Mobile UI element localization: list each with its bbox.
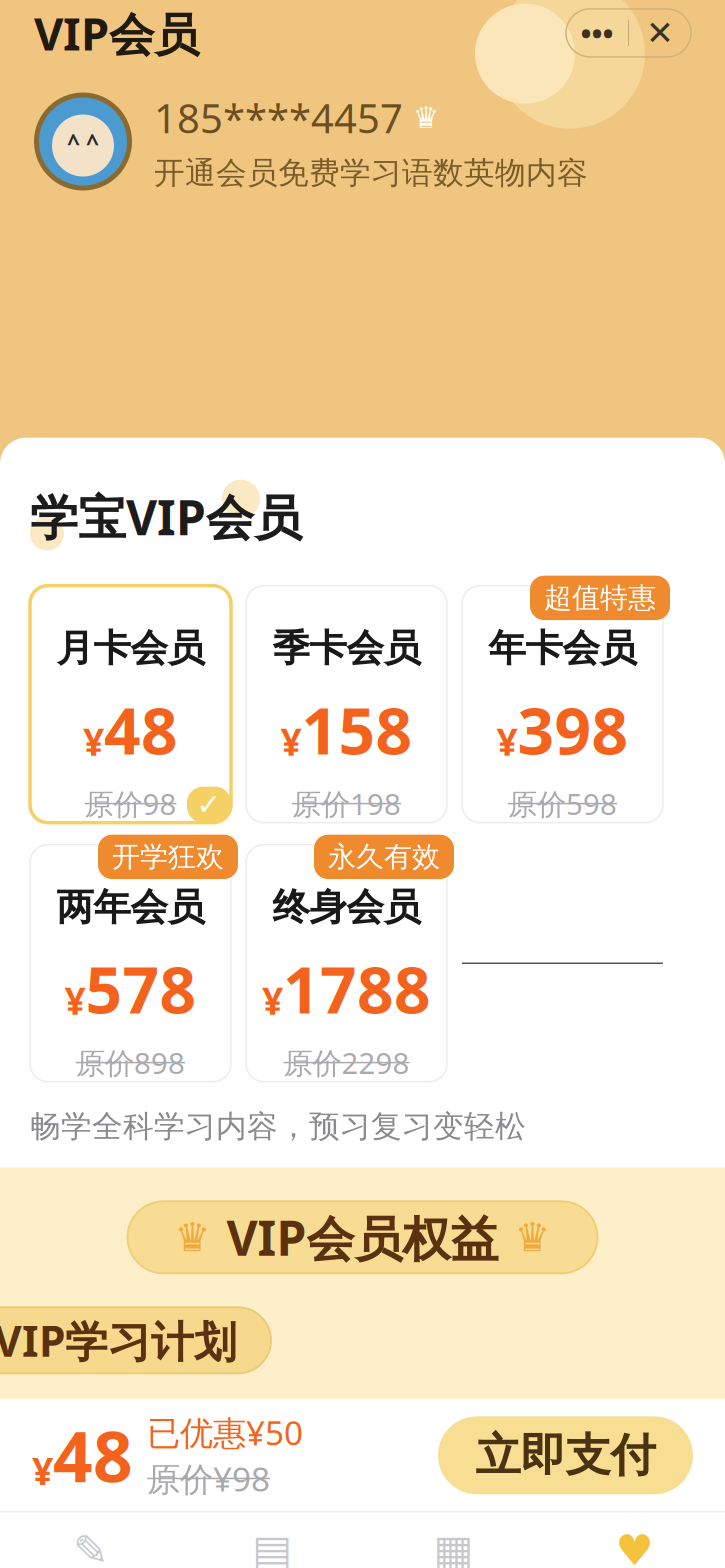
- button[interactable]: 季卡会员: [246, 586, 447, 823]
- staticText: ▤: [252, 1526, 292, 1568]
- staticText: 永久有效: [328, 840, 440, 874]
- staticText: ✕: [646, 14, 674, 52]
- staticText: 185****4457: [154, 91, 403, 144]
- staticText: 原价¥98: [147, 1456, 270, 1501]
- button[interactable]: 终身会员: [246, 845, 447, 1082]
- staticText: 畅学全科学习内容，预习复习变轻松: [30, 1108, 526, 1145]
- staticText: 超值特惠: [544, 581, 656, 615]
- staticText: 两年会员: [56, 884, 204, 930]
- staticText: 48: [53, 1409, 133, 1501]
- staticText: 开通会员免费学习语数英物内容: [154, 154, 588, 192]
- button[interactable]: More: [566, 9, 628, 57]
- staticText: •••: [580, 13, 613, 52]
- staticText: VIP会员权益: [226, 1205, 498, 1269]
- staticText: 学宝VIP会员: [30, 485, 302, 548]
- button[interactable]: Close: [629, 9, 691, 57]
- staticText: ✓: [196, 788, 221, 821]
- staticText: 原价98: [84, 784, 176, 823]
- button[interactable]: 月卡会员: [30, 586, 231, 823]
- button[interactable]: 年卡会员: [462, 586, 663, 823]
- staticText: 原价198: [292, 784, 401, 823]
- staticText: 开学狂欢: [112, 840, 224, 874]
- staticText: 158: [301, 687, 412, 772]
- staticText: ♛: [174, 1215, 210, 1260]
- button[interactable]: ✎: [0, 1526, 181, 1568]
- button[interactable]: VIP学习计划: [0, 1307, 271, 1373]
- staticText: 立即支付: [475, 1427, 655, 1483]
- button[interactable]: 两年会员: [30, 845, 231, 1082]
- staticText: 终身会员: [272, 884, 420, 930]
- staticText: ✎: [73, 1526, 109, 1568]
- button[interactable]: ♛: [127, 1201, 597, 1273]
- staticText: ♥: [615, 1526, 653, 1568]
- staticText: VIP学习计划: [0, 1312, 237, 1369]
- staticText: 578: [85, 946, 196, 1031]
- staticText: VIP会员: [34, 3, 199, 63]
- staticText: 已优惠¥50: [147, 1410, 303, 1454]
- staticText: 原价598: [508, 784, 617, 823]
- staticText: ♛: [514, 1215, 550, 1260]
- staticText: 年卡会员: [488, 625, 636, 671]
- button[interactable]: ▦: [362, 1526, 544, 1568]
- staticText: ¥: [32, 1446, 53, 1495]
- staticText: 月卡会员: [56, 625, 204, 671]
- staticText: 原价898: [76, 1043, 185, 1082]
- button[interactable]: 立即支付: [438, 1416, 693, 1494]
- button[interactable]: ▤: [181, 1526, 362, 1568]
- staticText: ▦: [433, 1526, 473, 1568]
- button[interactable]: ♥: [544, 1526, 725, 1568]
- staticText: ♛: [413, 101, 439, 134]
- staticText: ¥: [262, 975, 283, 1025]
- staticText: 398: [517, 687, 628, 772]
- staticText: 1788: [283, 946, 431, 1031]
- staticText: 48: [104, 687, 178, 772]
- staticText: 原价2298: [283, 1043, 409, 1082]
- staticText: ¥: [83, 716, 104, 766]
- staticText: ¥: [280, 716, 301, 766]
- staticText: 季卡会员: [272, 625, 420, 671]
- staticText: ^ ^: [67, 127, 99, 158]
- staticText: ¥: [64, 975, 85, 1025]
- staticText: ¥: [496, 716, 517, 766]
